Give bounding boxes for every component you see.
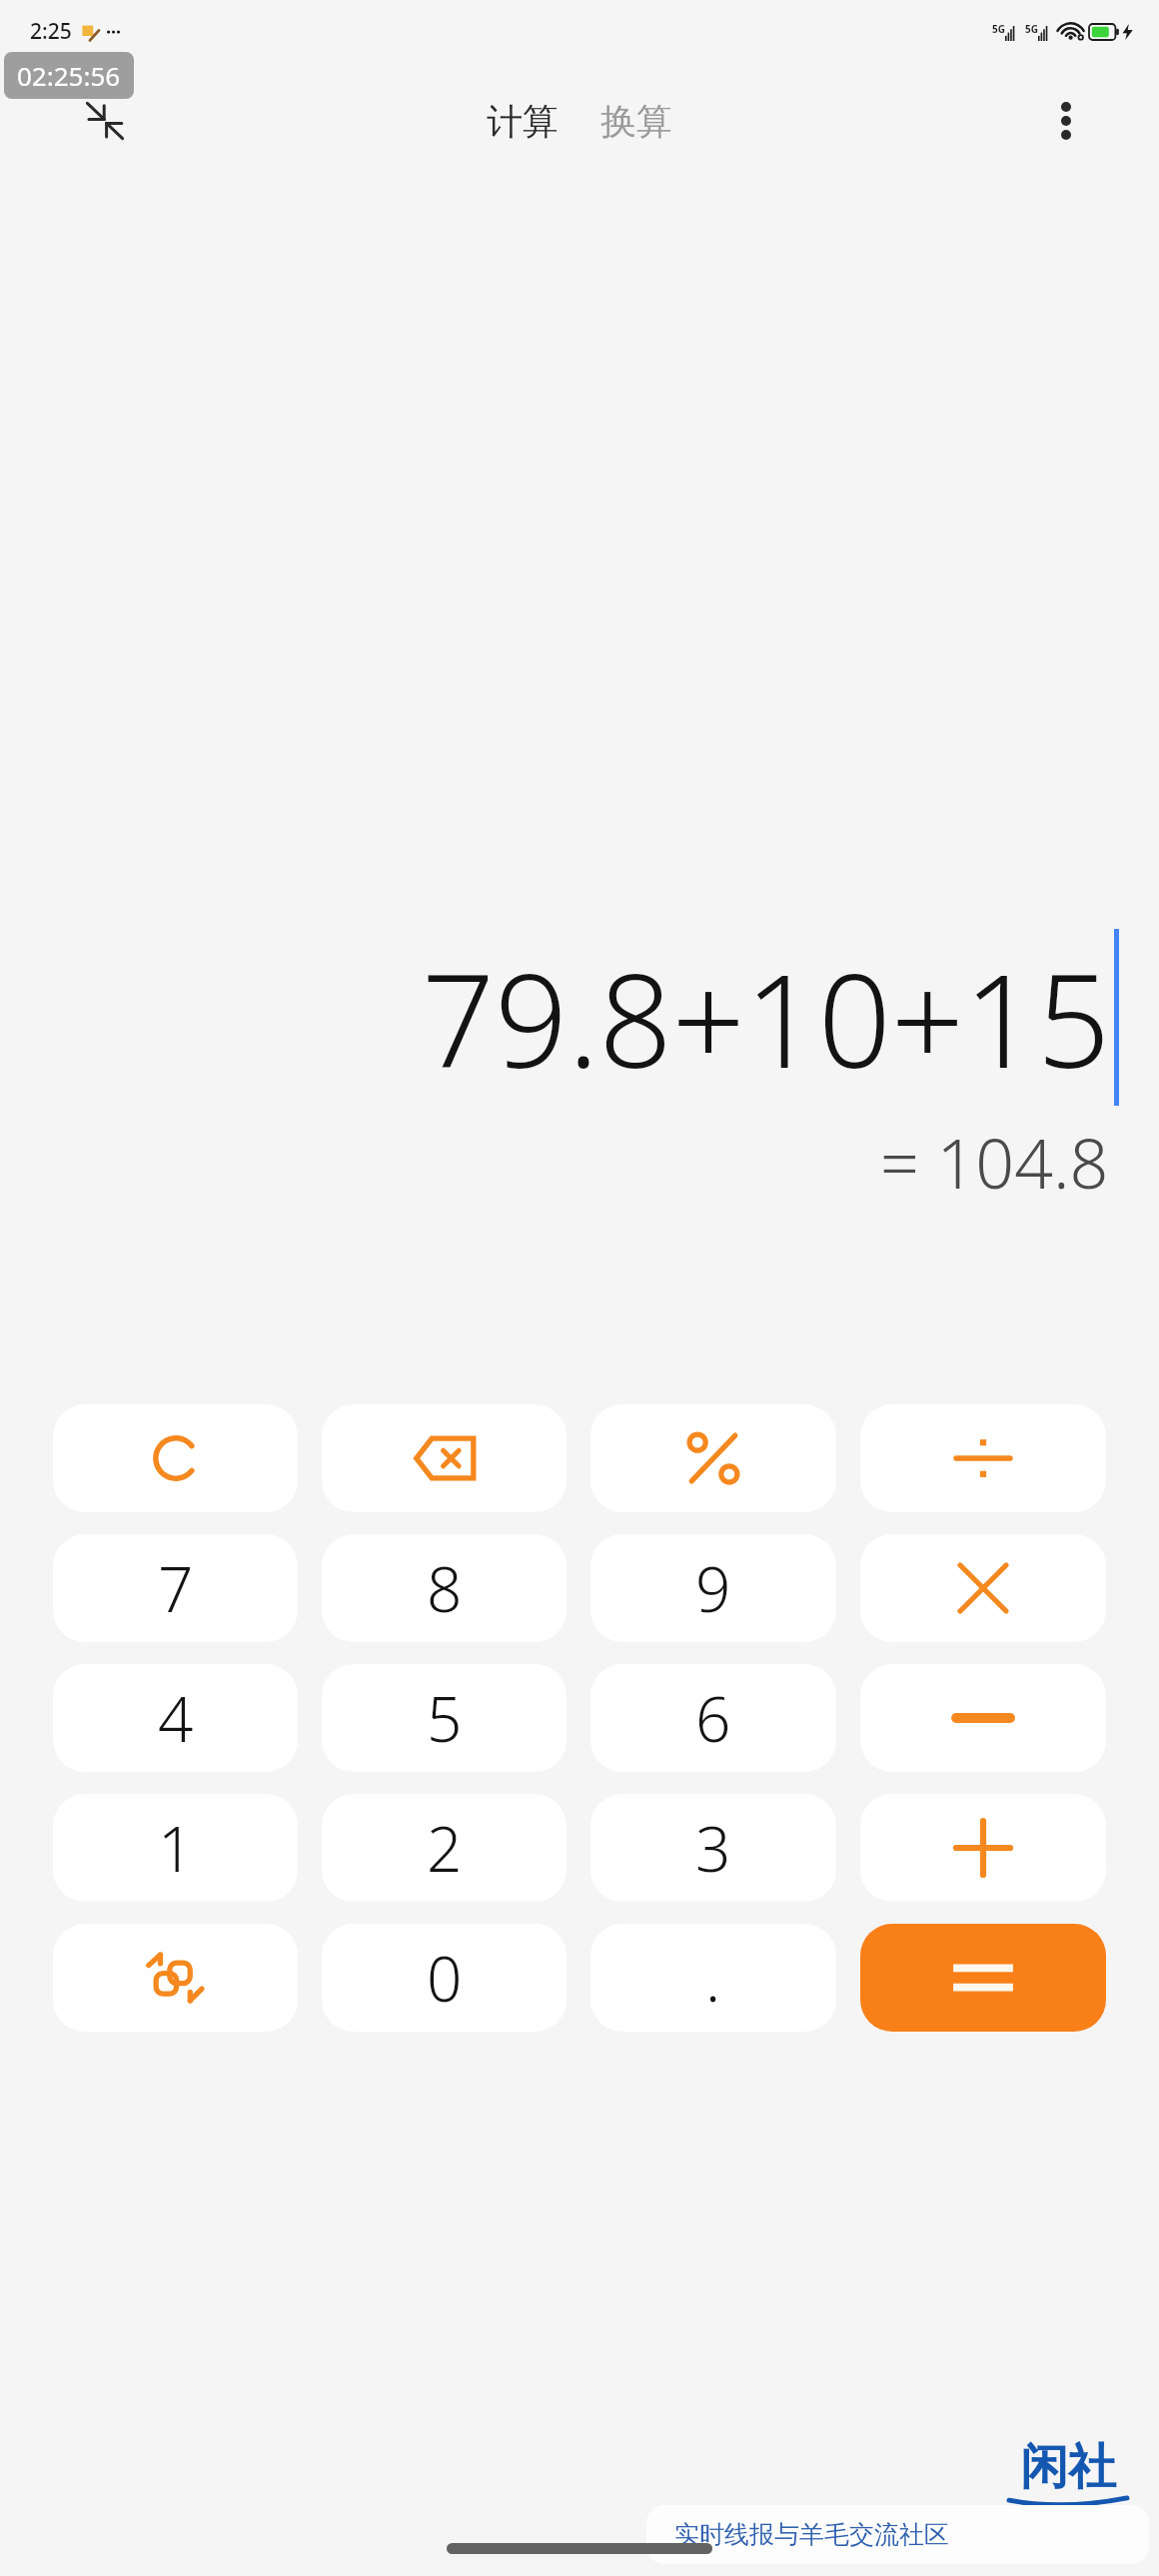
button[interactable]: Multiply: [860, 1534, 1106, 1642]
button[interactable]: 9: [590, 1534, 836, 1642]
staticText: 02:25:56: [17, 58, 121, 93]
button[interactable]: 7: [53, 1534, 298, 1642]
staticText: = 104.8: [880, 1116, 1109, 1209]
staticText: 实时线报与羊毛交流社区: [674, 2519, 949, 2550]
staticText: 6: [695, 1676, 731, 1760]
button[interactable]: 0: [322, 1924, 567, 2032]
staticText: 5G: [1025, 22, 1038, 36]
button[interactable]: Backspace: [322, 1404, 567, 1512]
button[interactable]: Collapse: [72, 88, 138, 154]
staticText: 闲社: [1020, 2437, 1116, 2497]
staticText: 0: [427, 1936, 463, 2020]
button[interactable]: 5: [322, 1664, 567, 1772]
staticText: 1: [158, 1806, 194, 1890]
button[interactable]: Clear: [53, 1404, 298, 1512]
button[interactable]: 2: [322, 1794, 567, 1902]
button[interactable]: Divide: [860, 1404, 1106, 1512]
staticText: 5G: [992, 22, 1005, 36]
staticText: 7: [158, 1546, 194, 1630]
button[interactable]: 4: [53, 1664, 298, 1772]
staticText: 9: [695, 1546, 731, 1630]
staticText: .: [705, 1936, 721, 2020]
button[interactable]: Plus: [860, 1794, 1106, 1902]
staticText: 8: [427, 1546, 463, 1630]
button[interactable]: 1: [53, 1794, 298, 1902]
button[interactable]: Scientific mode: [53, 1924, 298, 2032]
button[interactable]: 计算: [477, 93, 569, 150]
button[interactable]: 8: [322, 1534, 567, 1642]
button[interactable]: 3: [590, 1794, 836, 1902]
button[interactable]: .: [590, 1924, 836, 2032]
button[interactable]: Percent: [590, 1404, 836, 1512]
staticText: 79.8+10+15: [421, 931, 1110, 1105]
staticText: 3: [695, 1806, 731, 1890]
button[interactable]: 6: [590, 1664, 836, 1772]
staticText: 2:25: [30, 17, 72, 46]
staticText: 换算: [600, 99, 672, 144]
button[interactable]: Equals: [860, 1924, 1106, 2032]
staticText: 计算: [487, 99, 559, 144]
button[interactable]: Minus: [860, 1664, 1106, 1772]
staticText: 4: [158, 1676, 194, 1760]
staticText: 5: [427, 1676, 463, 1760]
staticText: 2: [427, 1806, 463, 1890]
button[interactable]: 换算: [590, 93, 682, 150]
button[interactable]: More options: [1033, 88, 1099, 154]
